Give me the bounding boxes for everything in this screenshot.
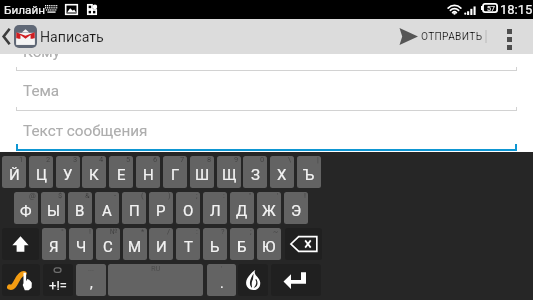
button[interactable]: ' [207,264,236,296]
staticText: У [63,166,73,184]
button[interactable]: ! [284,192,308,224]
staticText: Билайн [4,3,46,17]
button[interactable]: Enter [271,264,321,296]
button[interactable]: +!= [43,264,73,296]
button[interactable]: Back [0,19,37,54]
button[interactable]: ' [257,192,281,224]
staticText: : [223,192,225,200]
staticText: . [220,275,224,291]
staticText: 9 [234,156,239,164]
button[interactable]: 5 [109,156,133,188]
staticText: ! [89,228,91,236]
button[interactable]: 9 [217,156,241,188]
staticText: RU [151,264,161,273]
button[interactable]: ( [122,192,146,224]
staticText: 7 [180,156,185,164]
button[interactable]: More options [496,19,523,54]
button[interactable]: " [230,192,254,224]
staticText: ! [304,192,306,200]
button[interactable]: Backspace [285,228,322,260]
button[interactable]: ? [203,228,227,260]
button[interactable]: ; [230,228,254,260]
button[interactable]: 6 [136,156,160,188]
staticText: Щ [222,166,237,184]
button[interactable]: ! [69,228,93,260]
button[interactable]: * [123,228,147,260]
staticText: ' [221,264,223,273]
button[interactable]: 1 [2,156,26,188]
staticText: 6 [153,156,158,164]
staticText: Н [143,166,154,184]
button[interactable]: Voice input [238,264,268,296]
button[interactable]: 3 [56,156,80,188]
button[interactable]: ОТПРАВИТЬ [396,19,483,54]
staticText: Л [210,202,221,220]
button[interactable]: $ [41,192,65,224]
staticText: О [183,202,194,220]
button[interactable]: : [176,228,200,260]
staticText: Ж [262,202,276,220]
button[interactable]: ; [176,192,200,224]
staticText: ? [221,228,225,236]
staticText: Ю [262,238,276,256]
button[interactable]: / [149,228,173,260]
staticText: Я [49,238,59,256]
button[interactable]: : [203,192,227,224]
button[interactable]: & [68,192,92,224]
button[interactable]: @ [14,192,38,224]
staticText: 18:15 [500,2,533,17]
staticText: Е [117,166,126,184]
button[interactable]: \ [270,156,294,188]
staticText: Ц [36,166,47,184]
button[interactable]: 0 [243,156,267,188]
staticText: И [156,238,167,256]
staticText: Ф [20,202,32,220]
staticText: 5 [126,156,131,164]
button[interactable]: 8 [190,156,214,188]
staticText: " [249,192,252,200]
staticText: / [167,228,171,236]
button[interactable]: ° [42,228,66,260]
button[interactable]: 7 [163,156,187,188]
button[interactable]: - [95,192,119,224]
staticText: ; [196,192,198,200]
staticText: ~ [273,228,279,236]
staticText: Текст сообщения [23,122,148,140]
button[interactable]: Shift [2,228,39,260]
button[interactable]: Gesture typing [2,264,40,296]
button[interactable]: 2 [29,156,53,188]
staticText: \ [288,156,292,164]
staticText: Ъ [303,166,315,184]
button[interactable]: ~ [257,228,281,260]
staticText: | [317,156,319,164]
staticText: Кому [23,43,60,61]
staticText: Ь [210,238,220,256]
staticText: М [128,238,142,256]
staticText: 3 [73,156,78,164]
staticText: : [196,228,198,236]
button[interactable]: | [297,156,321,188]
staticText: 1 [19,156,24,164]
staticText: Р [156,202,166,220]
staticText: ( [141,192,144,200]
staticText: Тема [23,82,60,100]
staticText: З [251,166,260,184]
staticText: ° [61,228,64,236]
staticText: П [129,202,140,220]
staticText: Й [9,166,20,184]
button[interactable]: ... [76,264,106,296]
button[interactable]: 4 [82,156,106,188]
staticText: 2 [46,156,51,164]
button[interactable]: ) [149,192,173,224]
button[interactable]: № [96,228,120,260]
staticText: $ [58,192,63,200]
staticText: Т [184,238,193,256]
staticText: * [141,228,145,236]
staticText: - [114,192,117,200]
staticText: ' [277,192,279,200]
staticText: Б [237,238,247,256]
staticText: & [85,192,90,200]
staticText: Ч [76,238,87,256]
staticText: 8 [207,156,212,164]
